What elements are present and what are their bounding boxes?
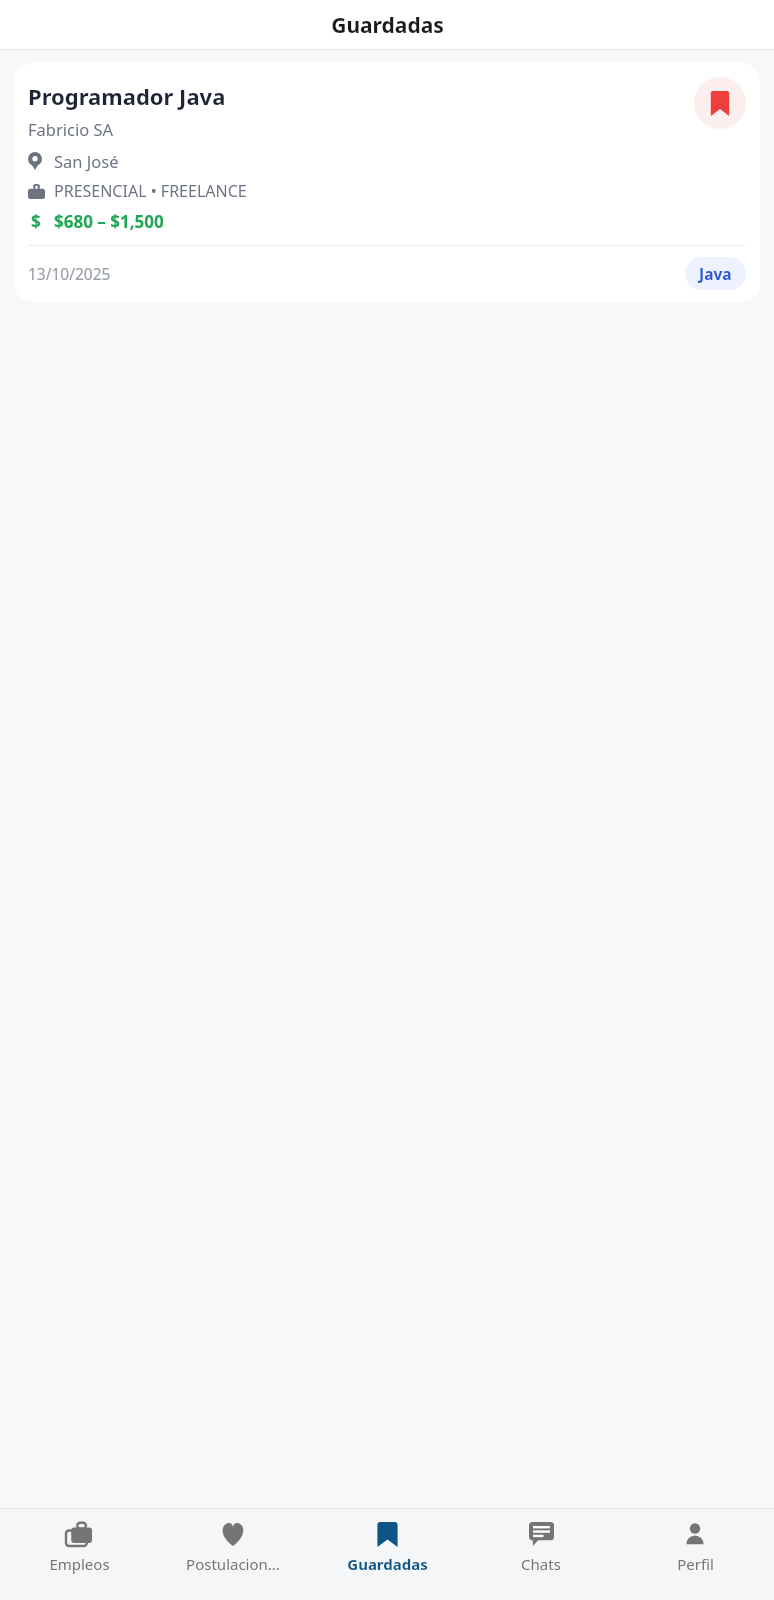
staticText: Fabricio SA [28,118,114,140]
staticText: Perfil [677,1554,714,1574]
staticText: Java [699,263,732,284]
staticText: San José [54,150,119,172]
staticText: Guardadas [347,1554,428,1574]
staticText: Postulacion... [186,1554,280,1574]
staticText: PRESENCIAL • FREELANCE [54,180,247,202]
button[interactable]: Programador Java [14,63,760,302]
staticText: Guardadas [331,11,444,40]
staticText: $680 – $1,500 [54,210,164,233]
staticText: Programador Java [28,81,226,111]
staticText: Chats [521,1554,561,1574]
button[interactable]: Chats [466,1509,616,1574]
button[interactable]: Perfil [620,1509,770,1574]
staticText: 13/10/2025 [28,263,111,284]
button[interactable]: Quitar de guardadas [694,77,746,129]
staticText: $ [31,210,41,233]
button[interactable]: Java [685,257,746,290]
button[interactable]: Guardadas [312,1509,462,1574]
button[interactable]: Empleos [4,1509,154,1574]
button[interactable]: Postulacion... [158,1509,308,1574]
staticText: Empleos [49,1554,110,1574]
